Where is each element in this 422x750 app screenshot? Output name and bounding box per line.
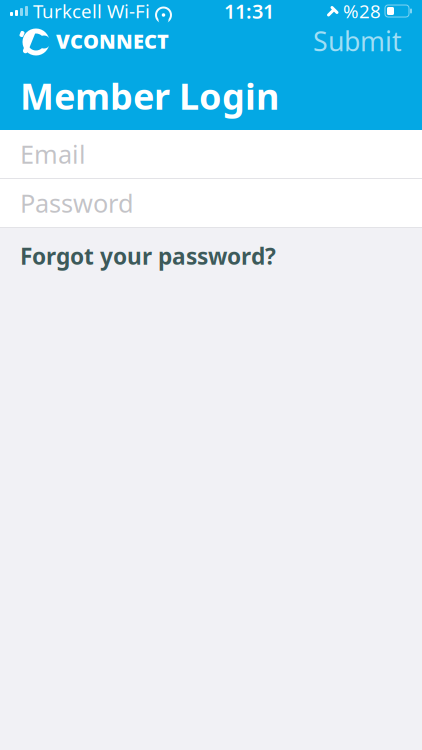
- staticText: Member Login: [20, 72, 279, 120]
- staticText: 11:31: [224, 0, 274, 24]
- staticText: %28: [343, 0, 381, 23]
- staticText: Email: [20, 137, 86, 171]
- button[interactable]: Submit: [307, 17, 408, 65]
- button[interactable]: Forgot your password?: [0, 228, 422, 284]
- staticText: VCONNECT: [56, 28, 169, 54]
- staticText: Forgot your password?: [20, 241, 276, 271]
- staticText: Turkcell Wi-Fi: [33, 0, 150, 23]
- staticText: Submit: [313, 23, 402, 59]
- button[interactable]: Password: [0, 179, 422, 228]
- button[interactable]: Email: [0, 130, 422, 179]
- staticText: Password: [20, 186, 134, 220]
